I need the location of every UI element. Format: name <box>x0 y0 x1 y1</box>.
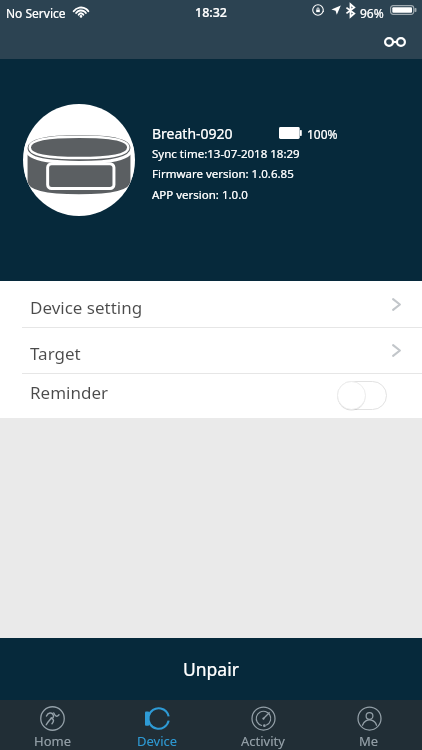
staticText: Activity <box>241 732 285 750</box>
staticText: Breath-0920 <box>152 124 233 143</box>
button[interactable]: Reminder toggle <box>336 380 388 411</box>
button[interactable]: Device <box>105 700 210 750</box>
staticText: Firmware version: 1.0.6.85 <box>152 166 294 182</box>
button[interactable]: Activity <box>210 700 316 750</box>
button[interactable]: Target <box>0 327 422 373</box>
staticText: Device <box>137 732 178 750</box>
button[interactable]: Device setting <box>0 281 422 327</box>
staticText: 96% <box>360 5 384 21</box>
button[interactable]: Unpair <box>0 638 422 700</box>
staticText: Sync time:13-07-2018 18:29 <box>152 146 300 162</box>
staticText: Me <box>359 732 379 750</box>
staticText: 100% <box>307 126 338 142</box>
staticText: Device setting <box>30 296 143 319</box>
staticText: Home <box>34 732 71 750</box>
staticText: Unpair <box>183 657 239 681</box>
staticText: No Service <box>6 5 66 21</box>
staticText: Target <box>30 342 81 365</box>
staticText: Reminder <box>30 381 109 404</box>
button[interactable]: Home <box>0 700 105 750</box>
button[interactable]: Reminder <box>0 373 422 418</box>
button[interactable]: Me <box>316 700 422 750</box>
button[interactable]: Link device <box>378 25 412 59</box>
staticText: 18:32 <box>195 4 228 21</box>
staticText: APP version: 1.0.0 <box>152 187 248 203</box>
